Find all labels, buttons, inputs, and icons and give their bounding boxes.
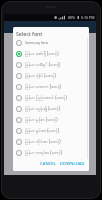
staticText: မြန်မာ ဇော်ဂျီ (ဖောင့်) <box>25 50 59 57</box>
button[interactable]: မြန်မာ ပုံနှိပ် (ဖောင့်) <box>13 70 89 81</box>
button[interactable]: မြန်မာ ဇော်ဂျီ (ဖောင့်) <box>13 48 89 59</box>
button[interactable]: မြန်မာ ပြည်ထောင် (ဖောင့်) <box>13 92 89 103</box>
button[interactable]: မြန်မာ တိုင်းစာ (ဖောင့်) <box>13 136 89 147</box>
staticText: မြန်မာ မွန်စာ (ဖောင့်) <box>25 116 58 123</box>
staticText: မြန်မာ ပြည်ထောင် (ဖောင့်) <box>25 94 67 101</box>
staticText: မြန်မာ တိုင်းစာ (ဖောင့်) <box>25 138 61 145</box>
staticText: မြန်မာ ယွန်းချို (ဖောင့်) <box>25 105 60 112</box>
staticText: မြန်မာ မာစတာ (ဖောင့်) <box>25 83 62 90</box>
staticText: Select font <box>16 30 43 37</box>
button[interactable]: မြန်မာ ယွန်းချို (ဖောင့်) <box>13 103 89 114</box>
button[interactable]: မြန်မာ မွန်စာ (ဖောင့်) <box>13 114 89 125</box>
button[interactable]: Samsung Sans <box>13 37 89 48</box>
button[interactable]: မြန်မာ ရှမ်းစာ (ဖောင့်) <box>13 125 89 136</box>
staticText: မြန်မာ ပုံနှိပ် (ဖောင့်) <box>25 72 56 79</box>
staticText: မြန်မာ ကရင်စာ (ဖောင့်) <box>25 149 63 156</box>
staticText: မြန်မာ ယοနုိ (ဖောင့်) <box>25 61 61 68</box>
staticText: 5:16 PM <box>81 15 95 20</box>
button[interactable]: DOWNLOAD <box>58 159 87 169</box>
staticText: 80% <box>68 15 76 20</box>
staticText: Samsung Sans <box>25 40 49 45</box>
button[interactable]: မြန်မာ မာစတာ (ဖောင့်) <box>13 81 89 92</box>
button[interactable]: မြန်မာ ကရင်စာ (ဖောင့်) <box>13 147 89 158</box>
staticText: DOWNLOAD <box>60 161 85 167</box>
staticText: CANCEL <box>40 161 56 167</box>
staticText: မြန်မာ ရှမ်းစာ (ဖောင့်) <box>25 127 59 134</box>
button[interactable]: CANCEL <box>38 159 58 169</box>
button[interactable]: မြန်မာ ယοနုိ (ဖောင့်) <box>13 59 89 70</box>
